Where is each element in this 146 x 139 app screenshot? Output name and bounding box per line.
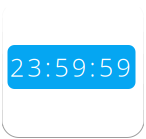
staticText: 23:59:59	[10, 50, 130, 84]
button[interactable]: 23:59:59	[7, 45, 135, 89]
